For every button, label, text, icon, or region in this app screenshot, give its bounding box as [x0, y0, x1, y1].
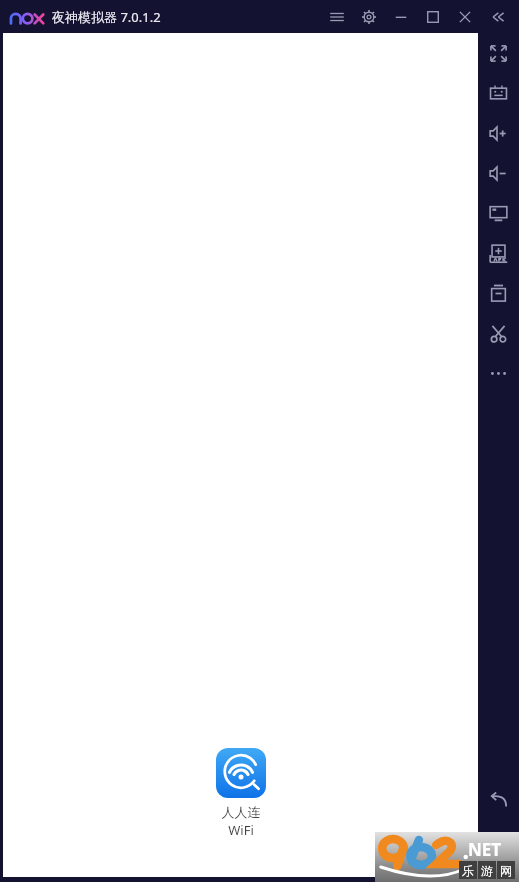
- button[interactable]: Minimize: [385, 2, 417, 32]
- button[interactable]: Home: [478, 820, 519, 860]
- button[interactable]: Screenshot: [478, 193, 519, 233]
- button[interactable]: Fullscreen: [478, 33, 519, 73]
- other: 人人连WiFi app icon: [216, 748, 266, 798]
- button[interactable]: Settings: [353, 2, 385, 32]
- button[interactable]: Volume up: [478, 113, 519, 153]
- button[interactable]: Install APK: [478, 233, 519, 273]
- button[interactable]: Menu: [321, 2, 353, 32]
- staticText: 人人连WiFi: [215, 804, 267, 839]
- button[interactable]: Close: [449, 2, 481, 32]
- button[interactable]: Volume down: [478, 153, 519, 193]
- staticText: 乐: [462, 863, 474, 878]
- button[interactable]: Shared folder: [478, 273, 519, 313]
- staticText: 网: [500, 863, 512, 878]
- button[interactable]: Cut: [478, 313, 519, 353]
- staticText: 游: [481, 863, 493, 878]
- staticText: NET: [468, 838, 502, 861]
- button[interactable]: Back: [478, 780, 519, 820]
- button[interactable]: Keyboard: [478, 73, 519, 113]
- button[interactable]: Collapse: [481, 2, 515, 32]
- button[interactable]: Maximize: [417, 2, 449, 32]
- staticText: 夜神模拟器 7.0.1.2: [52, 8, 161, 26]
- button[interactable]: 人人连WiFi app icon: [215, 748, 267, 839]
- button[interactable]: More: [478, 353, 519, 393]
